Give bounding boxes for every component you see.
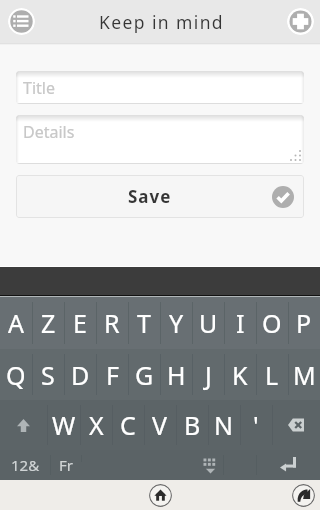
- button[interactable]: V: [144, 400, 176, 450]
- staticText: K: [232, 358, 248, 392]
- button[interactable]: M: [288, 349, 320, 400]
- button[interactable]: R: [96, 297, 128, 349]
- staticText: W: [52, 408, 76, 442]
- staticText: D: [71, 358, 90, 392]
- button[interactable]: G: [128, 349, 160, 400]
- button[interactable]: A: [0, 297, 32, 349]
- button[interactable]: P: [288, 297, 320, 349]
- staticText: R: [104, 306, 120, 340]
- staticText: L: [265, 358, 279, 392]
- button[interactable]: L: [256, 349, 288, 400]
- button[interactable]: U: [192, 297, 224, 349]
- button[interactable]: Details: [16, 115, 304, 164]
- button[interactable]: Forward: [292, 484, 315, 507]
- button[interactable]: Y: [160, 297, 192, 349]
- button[interactable]: Shift: [0, 400, 47, 450]
- button[interactable]: T: [128, 297, 160, 349]
- staticText: T: [137, 306, 151, 340]
- button[interactable]: W: [47, 400, 80, 450]
- button[interactable]: N: [208, 400, 240, 450]
- staticText: Details: [23, 121, 75, 143]
- button[interactable]: Z: [32, 297, 64, 349]
- staticText: E: [73, 306, 87, 340]
- staticText: Title: [23, 77, 55, 99]
- staticText: O: [262, 306, 282, 340]
- button[interactable]: J: [192, 349, 224, 400]
- button[interactable]: O: [256, 297, 288, 349]
- staticText: X: [89, 408, 104, 442]
- staticText: S: [41, 358, 55, 392]
- staticText: Z: [41, 306, 56, 340]
- button[interactable]: Enter: [256, 450, 320, 480]
- button[interactable]: S: [32, 349, 64, 400]
- staticText: A: [8, 306, 24, 340]
- button[interactable]: H: [160, 349, 192, 400]
- button[interactable]: B: [176, 400, 208, 450]
- button[interactable]: E: [64, 297, 96, 349]
- button[interactable]: F: [96, 349, 128, 400]
- staticText: N: [214, 408, 234, 442]
- button[interactable]: Backspace: [272, 400, 320, 450]
- staticText: H: [167, 358, 186, 392]
- button[interactable]: I: [224, 297, 256, 349]
- staticText: F: [106, 358, 119, 392]
- staticText: C: [120, 408, 136, 442]
- staticText: Keep in mind: [99, 10, 225, 34]
- staticText: Q: [6, 358, 26, 392]
- staticText: U: [199, 306, 218, 340]
- button[interactable]: X: [80, 400, 112, 450]
- staticText: 12&: [11, 455, 40, 475]
- button[interactable]: C: [112, 400, 144, 450]
- button[interactable]: D: [64, 349, 96, 400]
- staticText: ': [253, 408, 259, 442]
- staticText: J: [205, 358, 212, 392]
- button[interactable]: Add: [287, 8, 314, 35]
- staticText: Y: [169, 306, 184, 340]
- button[interactable]: Home: [149, 484, 172, 507]
- button[interactable]: 12&: [0, 450, 50, 480]
- staticText: Save: [128, 185, 172, 208]
- staticText: V: [152, 408, 168, 442]
- button[interactable]: Space: [81, 450, 223, 480]
- button[interactable]: Save: [16, 175, 304, 218]
- button[interactable]: Title: [16, 71, 304, 104]
- button[interactable]: ': [240, 400, 272, 450]
- staticText: I: [236, 306, 245, 340]
- staticText: P: [296, 306, 312, 340]
- button[interactable]: K: [224, 349, 256, 400]
- staticText: M: [293, 358, 316, 392]
- staticText: G: [135, 358, 154, 392]
- button[interactable]: Q: [0, 349, 32, 400]
- staticText: B: [184, 408, 201, 442]
- button[interactable]: Menu: [8, 8, 35, 35]
- staticText: Fr: [59, 455, 73, 475]
- button[interactable]: Fr: [50, 450, 81, 480]
